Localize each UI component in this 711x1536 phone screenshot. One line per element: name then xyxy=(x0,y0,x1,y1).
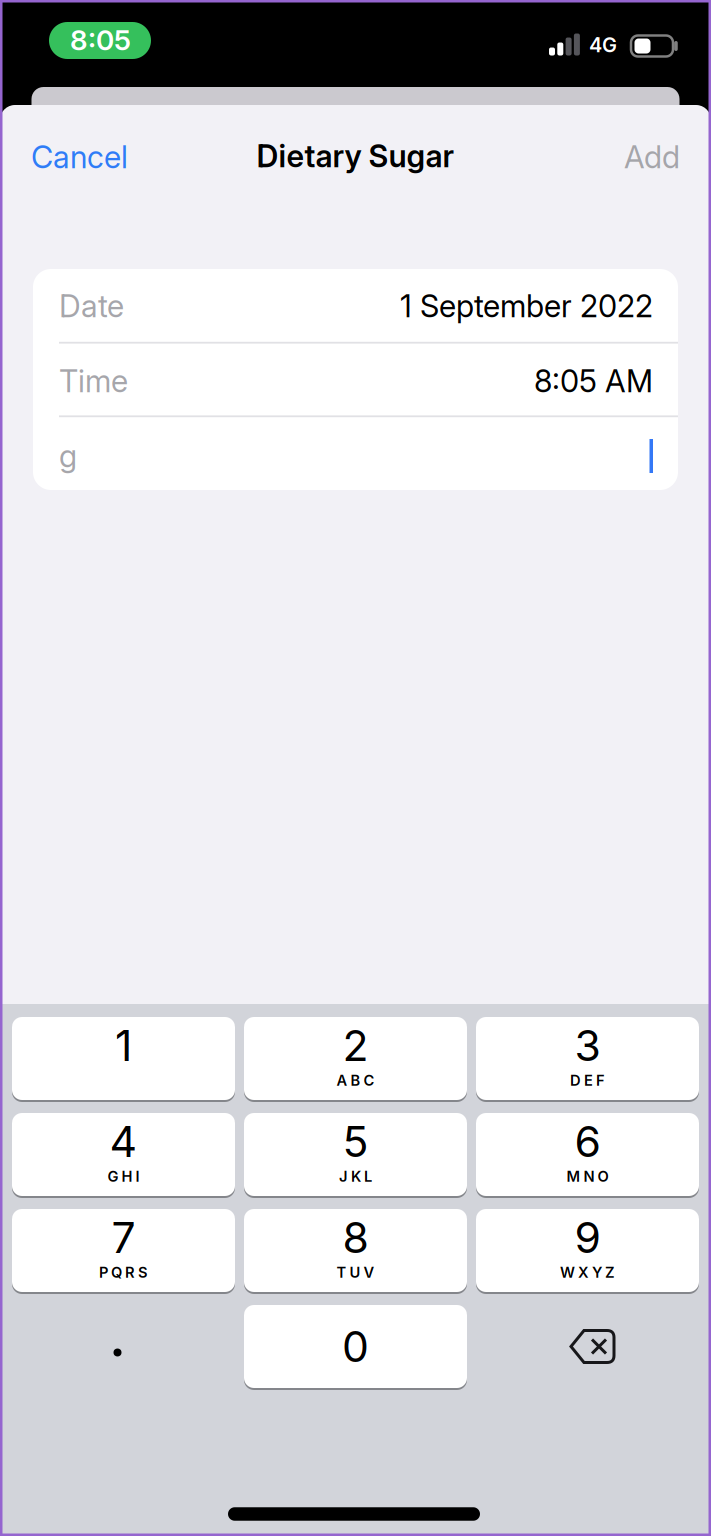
button[interactable]: Delete xyxy=(476,1305,699,1388)
staticText: 8 xyxy=(342,1212,368,1263)
staticText: 3 xyxy=(574,1020,600,1071)
button[interactable]: 7 xyxy=(12,1209,235,1292)
button[interactable]: 2 xyxy=(244,1017,467,1100)
button[interactable]: Decimal point xyxy=(12,1305,235,1388)
staticText: g xyxy=(59,438,77,474)
button[interactable]: 6 xyxy=(476,1113,699,1196)
staticText: Dietary Sugar xyxy=(256,138,454,174)
staticText: 8:05 xyxy=(70,23,131,56)
staticText: Time xyxy=(59,363,128,399)
button[interactable]: g xyxy=(59,419,653,492)
staticText: PQRS xyxy=(99,1264,148,1281)
staticText: DEF xyxy=(570,1072,605,1089)
staticText: 2 xyxy=(342,1020,368,1071)
staticText: Date xyxy=(59,288,124,324)
button[interactable]: 8 xyxy=(244,1209,467,1292)
button[interactable]: 9 xyxy=(476,1209,699,1292)
button[interactable]: 0 xyxy=(244,1305,467,1388)
button[interactable]: Time xyxy=(59,344,653,417)
staticText: Add xyxy=(624,139,680,175)
button[interactable]: 1 xyxy=(12,1017,235,1100)
staticText: WXYZ xyxy=(560,1264,615,1281)
staticText: 5 xyxy=(342,1116,368,1167)
staticText: 4G xyxy=(589,33,617,57)
staticText: ABC xyxy=(336,1072,374,1089)
button[interactable]: Add xyxy=(624,139,680,175)
button[interactable]: 5 xyxy=(244,1113,467,1196)
button[interactable]: Cancel xyxy=(31,139,128,175)
staticText: 6 xyxy=(574,1116,600,1167)
staticText: 7 xyxy=(111,1212,135,1263)
button[interactable]: Date xyxy=(59,269,653,342)
staticText: JKL xyxy=(339,1168,372,1185)
staticText: Cancel xyxy=(31,139,128,175)
staticText: 4 xyxy=(109,1116,137,1167)
staticText: 1 xyxy=(115,1020,132,1071)
staticText: 0 xyxy=(342,1321,369,1372)
staticText: MNO xyxy=(566,1168,608,1185)
button[interactable]: 3 xyxy=(476,1017,699,1100)
staticText: 8:05 AM xyxy=(534,363,653,399)
staticText: 1 September 2022 xyxy=(400,288,653,324)
button[interactable]: 4 xyxy=(12,1113,235,1196)
staticText: TUV xyxy=(336,1264,374,1281)
staticText: 9 xyxy=(574,1212,600,1263)
staticText: GHI xyxy=(107,1168,139,1185)
